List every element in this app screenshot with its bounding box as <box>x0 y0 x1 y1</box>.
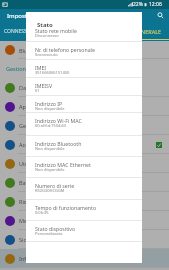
staticText: Batteria e risparmio <box>19 179 169 186</box>
button[interactable]: Gestione applicazioni <box>0 116 169 135</box>
staticText: Sicurezza e privacy <box>19 236 169 243</box>
staticText: Info sul telefono <box>19 255 169 262</box>
staticText: Non disponibile <box>35 167 65 172</box>
staticText: Stato dispositivo <box>35 225 76 232</box>
staticText: Numero di serie <box>35 182 75 189</box>
button[interactable]: Info sul telefono <box>0 249 169 268</box>
button[interactable]: Cerca <box>156 11 165 20</box>
staticText: Gestione applicazioni <box>19 122 169 129</box>
button[interactable]: GENERALE <box>134 22 169 41</box>
staticText: Dati e reti mobili <box>19 84 169 91</box>
button[interactable]: Numero di serie <box>26 178 142 199</box>
staticText: Nr. di telefono personale <box>35 46 95 53</box>
staticText: GENERALE <box>134 28 162 35</box>
staticText: Disconnesso <box>35 33 59 38</box>
staticText: Indirizzo IP <box>35 100 63 107</box>
staticText: 22% <box>133 1 143 8</box>
staticText: Memoria e archivio <box>19 217 169 224</box>
staticText: 12:06 <box>149 1 162 8</box>
button[interactable]: Indirizzo MAC Ethernet <box>26 157 142 177</box>
staticText: IMEI <box>35 64 47 71</box>
button[interactable]: Memoria e archivio <box>0 211 169 230</box>
button[interactable]: Account e backup <box>0 135 169 154</box>
staticText: Sconosciuto <box>35 52 58 57</box>
staticText: 351666066151450 <box>35 70 70 75</box>
button[interactable]: Applicazioni e notifiche delle ed <box>0 97 169 116</box>
staticText: Tempo di funzionamento <box>35 204 97 211</box>
button[interactable]: CONNESSIONI <box>0 22 60 41</box>
button[interactable]: Nr. di telefono personale <box>26 42 142 59</box>
staticText: Indirizzo Bluetooth <box>35 140 82 147</box>
staticText: CONNESSIONI <box>4 28 38 35</box>
staticText: Applicazioni e notifiche delle ed <box>19 103 169 110</box>
staticText: Non disponibile <box>35 146 65 151</box>
button[interactable]: Bluetooth <box>0 41 169 59</box>
staticText: Stato <box>37 21 53 27</box>
staticText: 60:af:6d:7f:04:63 <box>35 123 67 128</box>
staticText: Indirizzo Wi-Fi MAC <box>35 117 82 124</box>
button[interactable]: Sicurezza e privacy <box>0 230 169 249</box>
staticText: Risparmio energetico <box>19 198 169 205</box>
button[interactable]: Indirizzo IP <box>26 96 142 112</box>
button[interactable]: Batteria e risparmio <box>0 173 169 192</box>
staticText: Stato rete mobile <box>35 27 77 34</box>
staticText: 01 <box>35 88 40 93</box>
staticText: Account e backup <box>19 141 156 148</box>
button[interactable]: Stato rete mobile <box>26 27 142 41</box>
button[interactable]: IMEI <box>26 60 142 77</box>
button[interactable]: Indirizzo Wi-Fi MAC <box>26 113 142 135</box>
staticText: 0:06:35 <box>35 210 49 215</box>
staticText: Non disponibile <box>35 106 65 111</box>
staticText: Bluetooth <box>19 47 169 54</box>
staticText: Gestione <box>6 65 29 72</box>
staticText: Impostazioni <box>7 12 44 20</box>
button[interactable]: Risparmio energetico <box>0 192 169 211</box>
button[interactable]: Utenti e profili <box>0 154 169 173</box>
staticText: R52G30HCGGM <box>35 188 65 193</box>
button[interactable]: Tempo di funzionamento <box>26 200 142 220</box>
staticText: Utenti e profili <box>19 160 169 167</box>
button[interactable]: IMEISV <box>26 78 142 95</box>
staticText: IMEISV <box>35 82 53 89</box>
button[interactable]: Dati e reti mobili <box>0 78 169 97</box>
button[interactable]: Indirizzo Bluetooth <box>26 136 142 156</box>
button[interactable]: Stato dispositivo <box>26 221 142 241</box>
staticText: Personalizzato <box>35 231 63 236</box>
staticText: Indirizzo MAC Ethernet <box>35 161 91 168</box>
